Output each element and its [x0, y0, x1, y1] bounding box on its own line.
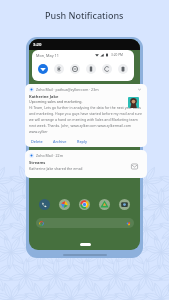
- button[interactable]: Quick setting: [38, 64, 48, 74]
- button[interactable]: Reply: [75, 138, 89, 145]
- button[interactable]: Quick setting: [118, 64, 128, 74]
- button[interactable]: Archive: [51, 138, 69, 145]
- staticText: Archive: [53, 139, 67, 144]
- button[interactable]: Zoho Mail · pathua@zylker.com · 23m: [25, 84, 147, 147]
- staticText: Zoho Mail · 22m: [36, 153, 63, 158]
- staticText: Katherine Jake shared the email: [29, 166, 83, 171]
- staticText: Zoho Mail · pathua@zylker.com · 23m: [36, 87, 99, 92]
- button[interactable]: Quick setting: [54, 64, 64, 74]
- staticText: Streams: [29, 160, 46, 165]
- staticText: 3:20: [33, 42, 42, 48]
- button[interactable]: Phone: [39, 199, 50, 210]
- button[interactable]: Quick setting: [102, 64, 112, 74]
- staticText: Katherine Jake: [29, 94, 59, 99]
- button[interactable]: Gmail: [59, 199, 70, 210]
- staticText: Hi Team, Lets go further in analysing th…: [29, 105, 143, 134]
- button[interactable]: Camera: [119, 199, 130, 210]
- button[interactable]: Zoho Mail · 22m: [25, 150, 147, 178]
- button[interactable]: Quick setting: [70, 64, 80, 74]
- staticText: Delete: [31, 139, 43, 144]
- other: Expand: [137, 87, 142, 92]
- staticText: Mon, May 11: [36, 53, 59, 58]
- staticText: Upcoming sales and marketing.: [29, 99, 83, 104]
- button[interactable]: Delete: [29, 138, 45, 145]
- staticText: Reply: [77, 139, 87, 144]
- staticText: 3:20 PM: [111, 53, 123, 57]
- other: Mail: [131, 163, 138, 170]
- button[interactable]: Play Store: [99, 199, 110, 210]
- button[interactable]: Chrome: [79, 199, 90, 210]
- button[interactable]: Quick setting: [86, 64, 96, 74]
- staticText: Push Notifications: [45, 9, 124, 21]
- button[interactable]: Search: [36, 218, 134, 228]
